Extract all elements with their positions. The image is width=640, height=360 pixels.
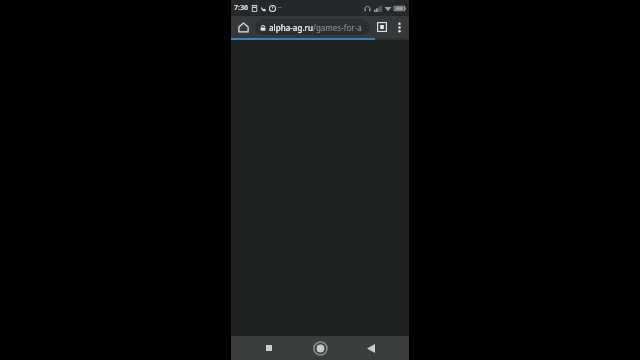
staticText: ·· bbox=[278, 3, 282, 13]
button[interactable]: More options bbox=[391, 19, 407, 35]
button[interactable]: Recent apps bbox=[256, 336, 282, 360]
button[interactable]: Tabs bbox=[373, 18, 391, 36]
button[interactable]: Home bbox=[233, 17, 253, 37]
button[interactable]: Back bbox=[358, 336, 384, 360]
button[interactable]: alpha-ag.ru/games-for-a bbox=[255, 19, 370, 35]
button[interactable]: Home bbox=[307, 336, 333, 360]
staticText: 7:36 bbox=[234, 3, 248, 13]
staticText: alpha-ag.ru/games-for-a bbox=[269, 22, 362, 33]
